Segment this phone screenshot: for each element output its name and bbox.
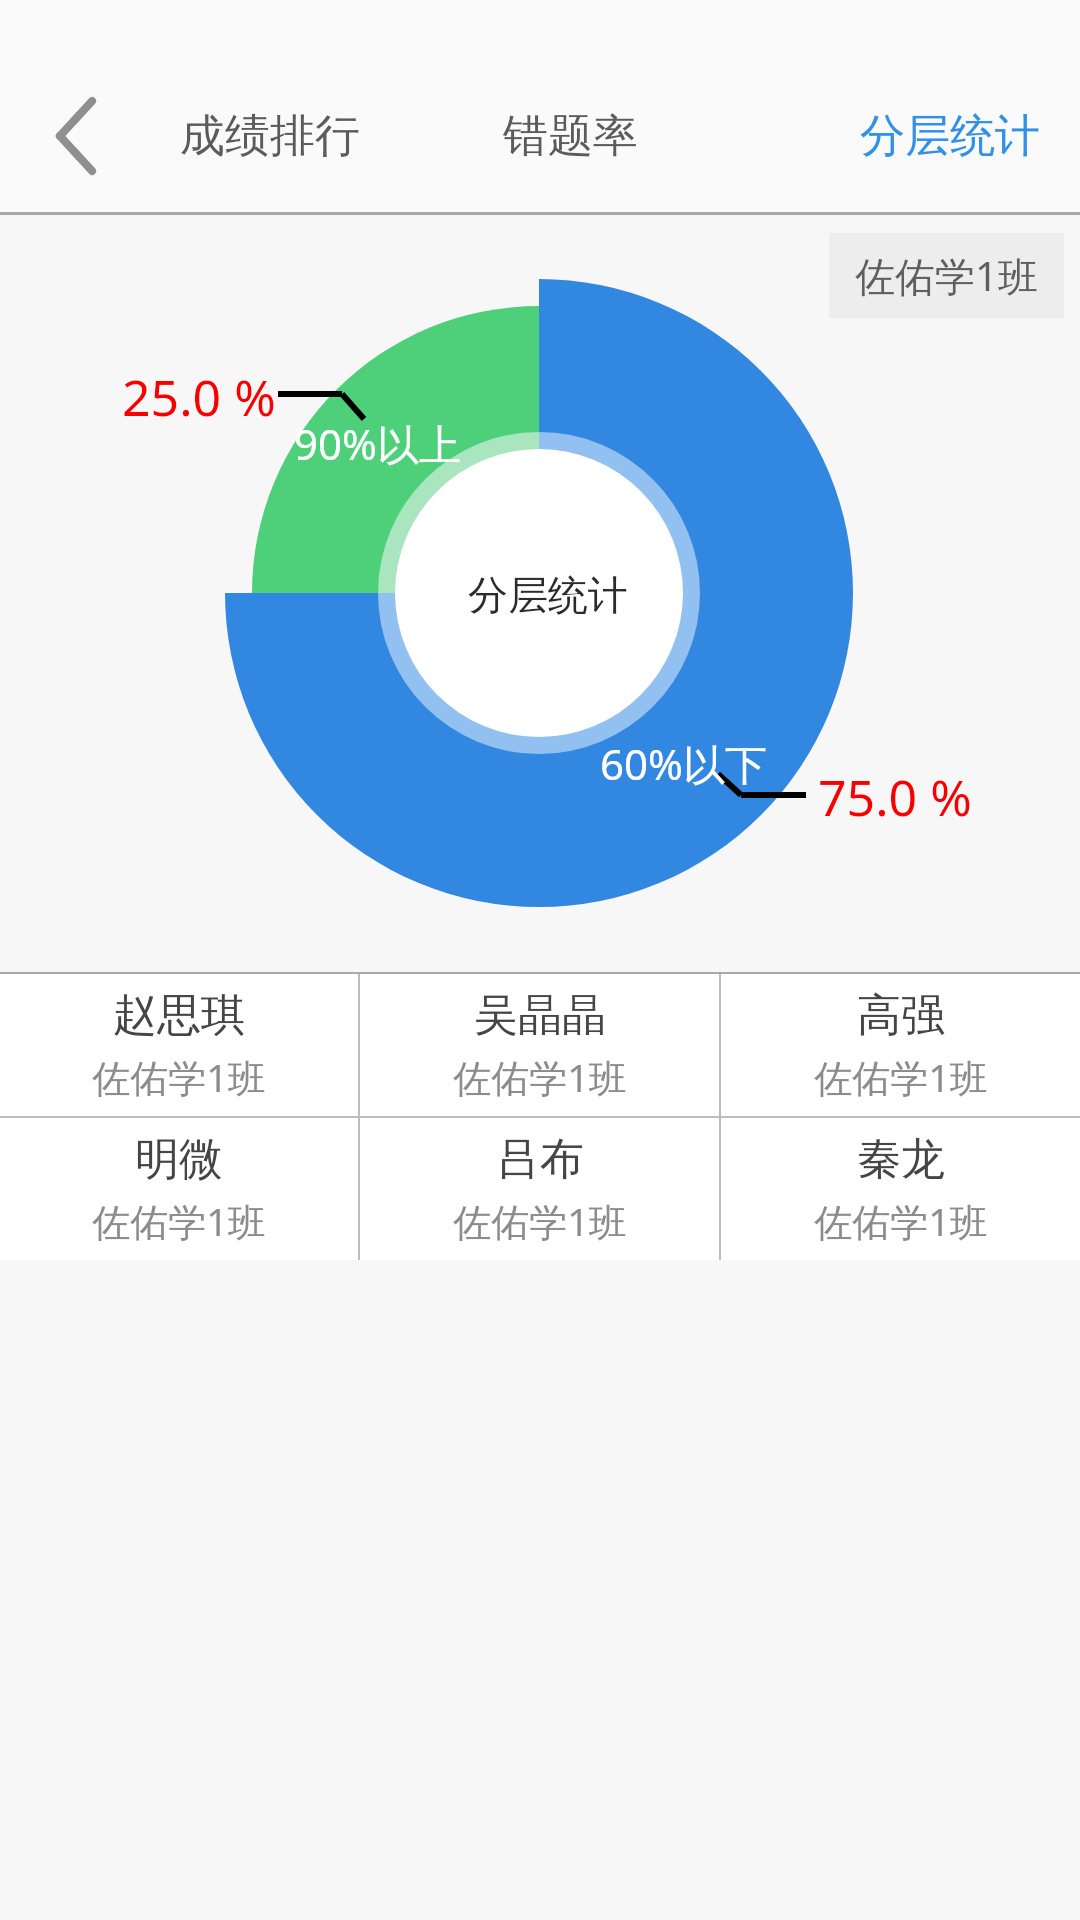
staticText: 赵思琪 <box>113 988 245 1043</box>
staticText: 60%以下 <box>600 735 767 792</box>
button[interactable]: 错题率 <box>470 60 670 212</box>
staticText: 错题率 <box>503 108 638 165</box>
staticText: 吕布 <box>496 1132 584 1187</box>
staticText: 明微 <box>135 1132 223 1187</box>
staticText: 分层统计 <box>860 108 1040 165</box>
button[interactable]: 吕布 <box>360 1118 719 1260</box>
staticText: 75.0 % <box>818 763 972 831</box>
button[interactable]: 佐佑学1班 <box>829 233 1064 318</box>
button[interactable]: Back <box>0 60 152 212</box>
staticText: 佐佑学1班 <box>453 1051 627 1103</box>
staticText: 佐佑学1班 <box>92 1195 266 1247</box>
staticText: 佐佑学1班 <box>814 1051 988 1103</box>
staticText: 90%以上 <box>294 415 461 472</box>
button[interactable]: 赵思琪 <box>0 974 358 1116</box>
button[interactable]: 成绩排行 <box>175 60 365 212</box>
staticText: 高强 <box>857 988 945 1043</box>
staticText: 秦龙 <box>857 1132 945 1187</box>
staticText: 吴晶晶 <box>474 988 606 1043</box>
button[interactable]: 分层统计 <box>855 60 1045 212</box>
button[interactable]: 高强 <box>721 974 1080 1116</box>
staticText: 25.0 % <box>122 363 276 431</box>
staticText: 佐佑学1班 <box>855 248 1038 303</box>
staticText: 佐佑学1班 <box>453 1195 627 1247</box>
staticText: 佐佑学1班 <box>814 1195 988 1247</box>
staticText: 佐佑学1班 <box>92 1051 266 1103</box>
staticText: 分层统计 <box>468 570 628 620</box>
button[interactable]: 明微 <box>0 1118 358 1260</box>
button[interactable]: 秦龙 <box>721 1118 1080 1260</box>
button[interactable]: 吴晶晶 <box>360 974 719 1116</box>
staticText: 成绩排行 <box>180 108 360 165</box>
